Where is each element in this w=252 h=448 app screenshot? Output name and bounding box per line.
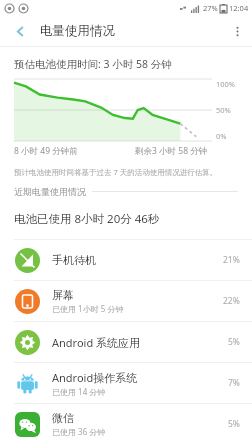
- staticText: Android 系统应用: [52, 335, 141, 350]
- staticText: 电量使用情况: [40, 23, 115, 39]
- staticText: 7%: [228, 377, 240, 389]
- staticText: 近期电量使用情况: [14, 186, 86, 197]
- button[interactable]: Android 系统应用: [0, 322, 252, 362]
- staticText: 8 小时 49 分钟前: [14, 145, 78, 157]
- staticText: 100%: [216, 79, 236, 89]
- button[interactable]: More options: [222, 16, 252, 46]
- staticText: 电池已使用 8小时 20分 46秒: [14, 211, 160, 227]
- button[interactable]: 微信: [0, 404, 252, 444]
- staticText: 12:04: [229, 3, 249, 13]
- staticText: Android操作系统: [52, 370, 138, 385]
- staticText: 21%: [223, 254, 240, 266]
- staticText: 预计电池使用时间将基于过去 7 天的活动使用情况进行估算。: [14, 167, 218, 177]
- staticText: 已使用 1小时 5 分钟: [52, 303, 124, 314]
- staticText: 5%: [228, 418, 240, 430]
- staticText: 已使用 36 分钟: [52, 426, 106, 437]
- button[interactable]: Android操作系统: [0, 363, 252, 403]
- staticText: 微信: [52, 411, 74, 425]
- button[interactable]: Back: [0, 16, 40, 46]
- staticText: 22%: [223, 295, 240, 307]
- button[interactable]: 屏幕: [0, 281, 252, 321]
- staticText: 已使用 14 分钟: [52, 386, 106, 397]
- staticText: 50%: [216, 105, 231, 115]
- staticText: 0%: [216, 131, 227, 141]
- staticText: 27%: [203, 3, 218, 13]
- staticText: 手机待机: [52, 253, 96, 267]
- button[interactable]: 手机待机: [0, 240, 252, 280]
- staticText: 屏幕: [52, 288, 74, 302]
- staticText: 预估电池使用时间: 3 小时 58 分钟: [14, 57, 172, 71]
- staticText: 5%: [228, 336, 240, 348]
- staticText: 剩余3 小时 58 分钟: [135, 145, 208, 157]
